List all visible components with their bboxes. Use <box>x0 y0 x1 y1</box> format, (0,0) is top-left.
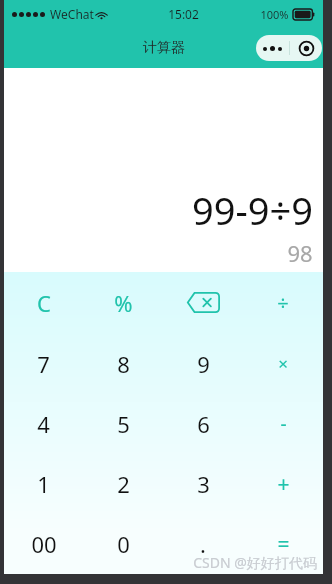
button[interactable]: × <box>243 333 323 394</box>
staticText: 98 <box>287 238 313 268</box>
staticText: CSDN @好好打代码 <box>193 553 317 572</box>
staticText: 100% <box>260 7 289 22</box>
staticText: 9 <box>197 349 210 379</box>
staticText: 8 <box>117 349 130 379</box>
staticText: 00 <box>31 529 57 559</box>
staticText: 计算器 <box>143 39 185 57</box>
button[interactable]: ÷ <box>243 272 323 333</box>
button[interactable]: Backspace <box>163 272 243 333</box>
staticText: 6 <box>197 409 210 439</box>
button[interactable]: 8 <box>83 333 163 394</box>
button[interactable]: 5 <box>83 394 163 454</box>
button[interactable]: % <box>83 272 163 333</box>
button[interactable]: = <box>243 514 323 574</box>
staticText: × <box>278 352 288 375</box>
staticText: = <box>277 530 290 559</box>
button[interactable]: 4 <box>4 394 83 454</box>
staticText: 0 <box>117 529 130 559</box>
staticText: 99-9÷9 <box>192 184 313 236</box>
button[interactable]: 6 <box>163 394 243 454</box>
button[interactable]: + <box>243 454 323 514</box>
button[interactable]: 2 <box>83 454 163 514</box>
button[interactable]: Menu and close <box>256 35 322 61</box>
staticText: 5 <box>117 409 130 439</box>
staticText: . <box>200 529 206 559</box>
staticText: WeChat <box>50 6 94 22</box>
staticText: 3 <box>197 469 210 499</box>
staticText: % <box>114 288 133 318</box>
button[interactable]: 00 <box>4 514 83 574</box>
button[interactable]: - <box>243 394 323 454</box>
button[interactable]: 3 <box>163 454 243 514</box>
staticText: ÷ <box>277 289 289 316</box>
staticText: C <box>37 288 51 318</box>
button[interactable]: C <box>4 272 83 333</box>
staticText: - <box>280 411 287 437</box>
staticText: + <box>277 470 290 499</box>
button[interactable]: 0 <box>83 514 163 574</box>
staticText: 2 <box>117 469 130 499</box>
button[interactable]: 9 <box>163 333 243 394</box>
button[interactable]: 1 <box>4 454 83 514</box>
staticText: 4 <box>37 409 50 439</box>
staticText: 15:02 <box>168 6 199 22</box>
staticText: 7 <box>37 349 50 379</box>
button[interactable]: 7 <box>4 333 83 394</box>
button[interactable]: . <box>163 514 243 574</box>
staticText: 1 <box>37 469 50 499</box>
